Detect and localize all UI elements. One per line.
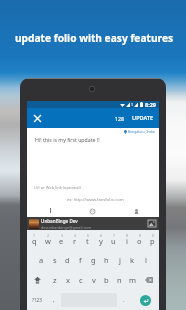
- button[interactable]: a: [34, 250, 48, 270]
- staticText: k: [130, 255, 135, 265]
- staticText: m: [129, 275, 137, 285]
- button[interactable]: 7: [107, 230, 120, 250]
- staticText: x: [66, 275, 70, 285]
- button[interactable]: Bengaluru, India: [124, 129, 155, 134]
- staticText: Url or Web link (optional): [34, 185, 81, 190]
- staticText: 1: [131, 102, 134, 107]
- staticText: i: [126, 236, 128, 246]
- staticText: update folio with easy features: [15, 31, 174, 45]
- button[interactable]: UnbanBinge Dev: [27, 217, 159, 230]
- button[interactable]: ?123: [27, 290, 47, 310]
- staticText: Hi! this is my first update !!: [35, 136, 100, 143]
- staticText: 3: [61, 233, 63, 238]
- staticText: 7: [113, 233, 115, 238]
- staticText: .: [123, 296, 125, 304]
- button[interactable]: s: [48, 250, 61, 270]
- staticText: w: [45, 236, 51, 246]
- staticText: d: [65, 255, 70, 265]
- staticText: z: [53, 275, 57, 285]
- staticText: 4: [74, 233, 76, 238]
- button[interactable]: f: [74, 250, 87, 270]
- staticText: 5: [87, 233, 89, 238]
- staticText: 0: [152, 233, 154, 238]
- button[interactable]: l: [139, 250, 152, 270]
- staticText: j: [119, 255, 121, 265]
- staticText: q: [32, 236, 37, 246]
- button[interactable]: b: [100, 270, 113, 290]
- staticText: v: [92, 275, 96, 285]
- button[interactable]: Tag: [131, 206, 141, 216]
- button[interactable]: 4: [68, 230, 81, 250]
- button[interactable]: g: [87, 250, 100, 270]
- staticText: 128: [115, 115, 124, 122]
- staticText: e: [59, 236, 64, 246]
- button[interactable]: 6: [94, 230, 107, 250]
- button[interactable]: UPDATE: [130, 110, 156, 126]
- button[interactable]: 3: [55, 230, 68, 250]
- staticText: UnbanBinge Dev: [41, 218, 78, 224]
- button[interactable]: z: [48, 270, 61, 290]
- button[interactable]: v: [87, 270, 100, 290]
- staticText: Bengaluru, India: [128, 129, 155, 134]
- button[interactable]: 8: [120, 230, 133, 250]
- button[interactable]: h: [100, 250, 113, 270]
- staticText: p: [150, 236, 155, 246]
- button[interactable]: 5: [81, 230, 94, 250]
- button[interactable]: Close: [27, 108, 47, 128]
- staticText: 9: [139, 233, 141, 238]
- staticText: r: [73, 236, 77, 246]
- button[interactable]: Enter: [131, 290, 159, 310]
- staticText: devunbanbinge@gmail.com: [41, 225, 92, 230]
- staticText: ?123: [32, 297, 42, 303]
- button[interactable]: k: [126, 250, 139, 270]
- button[interactable]: Shift: [27, 270, 48, 290]
- button[interactable]: Add photo: [146, 218, 157, 229]
- staticText: 2: [47, 233, 49, 238]
- button[interactable]: Backspace: [139, 270, 159, 290]
- staticText: c: [79, 275, 83, 285]
- staticText: 1: [33, 233, 35, 238]
- button[interactable]: Cursor: [46, 205, 54, 215]
- staticText: s: [53, 255, 57, 265]
- staticText: n: [117, 275, 122, 285]
- staticText: 8:29: [145, 101, 156, 108]
- staticText: u: [111, 236, 116, 246]
- staticText: ,: [53, 296, 55, 304]
- button[interactable]: x: [61, 270, 74, 290]
- button[interactable]: d: [61, 250, 74, 270]
- button[interactable]: m: [126, 270, 139, 290]
- staticText: 6: [100, 233, 102, 238]
- button[interactable]: Comma: [47, 290, 61, 310]
- button[interactable]: 1: [27, 230, 41, 250]
- staticText: l: [145, 255, 147, 265]
- staticText: y: [99, 236, 103, 246]
- staticText: a: [39, 255, 44, 265]
- staticText: 8: [126, 233, 128, 238]
- button[interactable]: j: [113, 250, 126, 270]
- button[interactable]: Emoji: [87, 206, 97, 216]
- staticText: b: [104, 275, 109, 285]
- staticText: g: [91, 255, 96, 265]
- staticText: ex: http://www.fansfolio.com: [67, 197, 124, 203]
- button[interactable]: 2: [41, 230, 55, 250]
- staticText: t: [86, 236, 89, 246]
- staticText: o: [137, 236, 142, 246]
- staticText: h: [104, 255, 109, 265]
- button[interactable]: 9: [133, 230, 146, 250]
- button[interactable]: c: [74, 270, 87, 290]
- button[interactable]: 0: [146, 230, 159, 250]
- staticText: f: [79, 255, 82, 265]
- button[interactable]: n: [113, 270, 126, 290]
- staticText: UPDATE: [132, 114, 154, 122]
